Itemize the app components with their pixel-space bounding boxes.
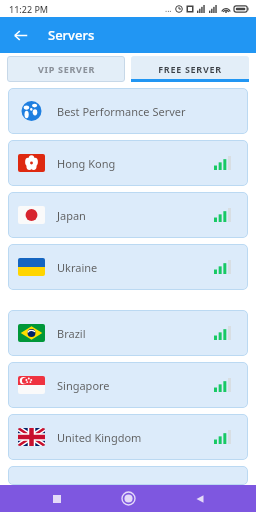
button[interactable]: Back (185, 485, 215, 512)
staticText: Best Performance Server (57, 104, 239, 119)
button[interactable]: Home (113, 485, 143, 512)
staticText: Japan (57, 208, 214, 223)
button[interactable]: Ukraine (8, 244, 248, 290)
button[interactable]: United Kingdom (8, 414, 248, 460)
staticText: ... (165, 3, 172, 14)
staticText: VIP SERVER (38, 63, 95, 75)
button[interactable] (8, 466, 248, 485)
staticText: 11:22 PM (9, 3, 49, 15)
staticText: Brazil (57, 326, 214, 341)
button[interactable]: Best Performance Server (8, 88, 248, 134)
staticText: Singapore (57, 378, 214, 393)
button[interactable]: Singapore (8, 362, 248, 408)
staticText: Servers (48, 26, 95, 44)
button[interactable]: Brazil (8, 310, 248, 356)
staticText: United Kingdom (57, 430, 214, 445)
staticText: Hong Kong (57, 156, 214, 171)
button[interactable]: VIP SERVER (7, 56, 125, 82)
staticText: Ukraine (57, 260, 214, 275)
button[interactable]: FREE SERVER (131, 56, 249, 82)
button[interactable]: Back (6, 21, 34, 49)
button[interactable]: Hong Kong (8, 140, 248, 186)
staticText: FREE SERVER (158, 63, 222, 75)
button[interactable]: Recent apps (42, 485, 72, 512)
button[interactable]: Japan (8, 192, 248, 238)
